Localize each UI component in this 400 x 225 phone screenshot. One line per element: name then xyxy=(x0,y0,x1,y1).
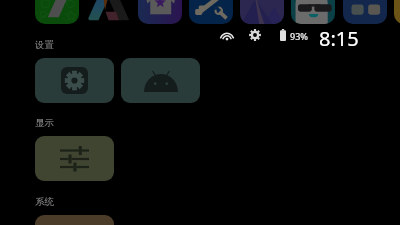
staticText: 93% xyxy=(290,30,308,42)
button[interactable] xyxy=(35,136,114,181)
button[interactable]: Play Store xyxy=(138,0,182,24)
button[interactable]: Gallery xyxy=(240,0,284,24)
other: Settings xyxy=(249,29,261,41)
button[interactable]: Tasks xyxy=(343,0,387,24)
button[interactable]: Android Studio xyxy=(87,0,131,24)
staticText: 设置 xyxy=(35,39,54,51)
button[interactable]: Developer Tools xyxy=(189,0,233,24)
button[interactable] xyxy=(121,58,200,103)
button[interactable]: Android Avatar xyxy=(291,0,335,24)
other: Battery xyxy=(280,29,286,41)
button[interactable]: Clips xyxy=(35,0,79,24)
button[interactable] xyxy=(35,58,114,103)
button[interactable]: Files xyxy=(394,0,400,24)
staticText: 显示 xyxy=(35,117,54,129)
other: Wi-Fi xyxy=(220,29,234,40)
staticText: 8:15 xyxy=(319,25,359,52)
button[interactable] xyxy=(35,215,114,225)
staticText: 系统 xyxy=(35,196,54,208)
